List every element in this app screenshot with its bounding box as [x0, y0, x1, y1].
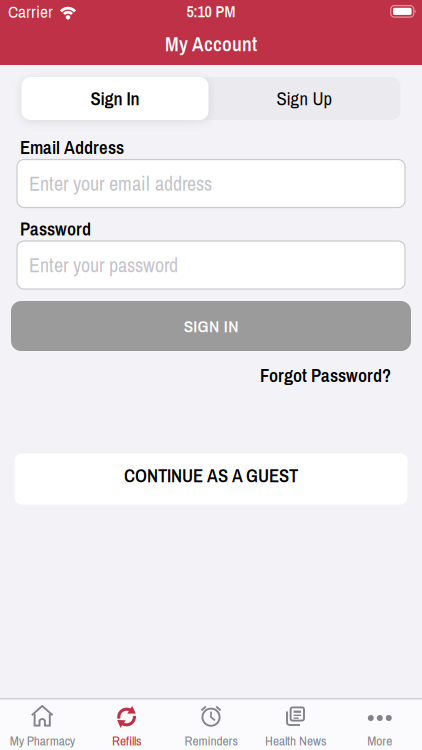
button[interactable]: Enter your password [17, 241, 405, 289]
staticText: 5:10 PM [186, 1, 235, 22]
staticText: Email Address [20, 135, 124, 159]
staticText: Carrier [8, 0, 53, 23]
staticText: More [367, 732, 392, 749]
button[interactable]: My Pharmacy [0, 703, 84, 749]
button[interactable]: Refills [84, 703, 169, 749]
button[interactable]: SIGN IN [11, 301, 411, 351]
staticText: Sign In [90, 86, 139, 111]
button[interactable]: Sign In [21, 77, 208, 120]
button[interactable]: Reminders [169, 703, 253, 749]
staticText: Sign Up [276, 86, 332, 111]
staticText: My Account [165, 31, 257, 57]
button[interactable]: Sign Up [208, 77, 400, 120]
staticText: Refills [112, 732, 141, 749]
staticText: Reminders [184, 732, 237, 749]
staticText: Forgot Password? [260, 363, 391, 387]
staticText: Enter your password [29, 252, 178, 278]
button[interactable]: Forgot Password? [260, 363, 391, 387]
button[interactable]: Health News [253, 703, 338, 749]
button[interactable]: More [338, 703, 422, 749]
staticText: My Pharmacy [10, 732, 75, 749]
staticText: SIGN IN [184, 315, 238, 337]
staticText: CONTINUE AS A GUEST [124, 463, 298, 488]
staticText: Password [20, 216, 91, 241]
staticText: Health News [265, 732, 326, 749]
staticText: Enter your email address [29, 170, 212, 197]
button[interactable]: CONTINUE AS A GUEST [14, 453, 407, 504]
button[interactable]: Enter your email address [17, 159, 405, 207]
